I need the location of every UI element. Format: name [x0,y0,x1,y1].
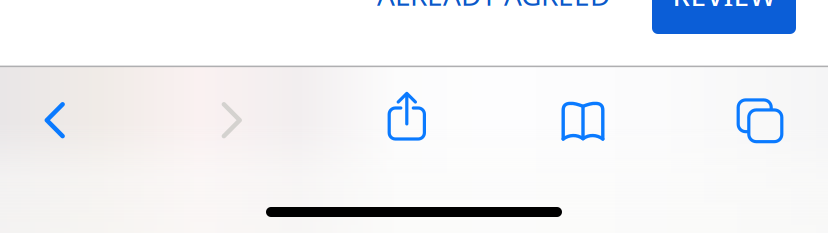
button[interactable]: Forward [185,76,279,164]
button[interactable]: REVIEW [652,0,796,34]
staticText: ALREADY AGREED [377,0,610,14]
staticText: REVIEW [672,0,775,14]
button[interactable]: Back [8,76,102,164]
button[interactable]: Tabs [713,77,807,165]
button[interactable]: Share [360,73,454,161]
button[interactable]: Bookmarks [536,77,630,165]
